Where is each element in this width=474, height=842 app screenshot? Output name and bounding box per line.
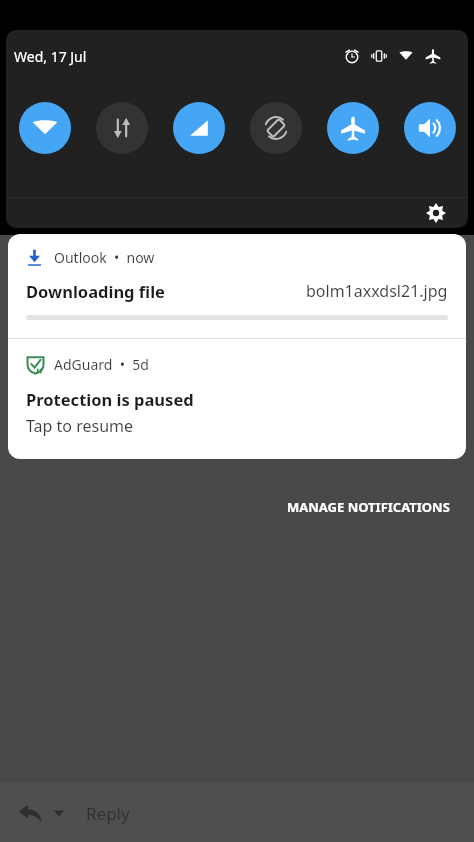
other: Vibrate mode <box>370 47 388 65</box>
button[interactable]: AdGuard • 5d <box>8 339 466 459</box>
other: More reply options <box>48 802 70 824</box>
button[interactable]: Reply <box>14 797 130 829</box>
staticText: Outlook • now <box>54 248 155 267</box>
other: Wi-Fi <box>397 47 415 65</box>
button[interactable]: Mobile data <box>96 102 148 154</box>
staticText: Tap to resume <box>26 415 134 437</box>
button[interactable]: MANAGE NOTIFICATIONS <box>281 494 456 520</box>
button[interactable]: Mobile signal <box>173 102 225 154</box>
staticText: bolm1axxdsl21.jpg <box>306 280 448 302</box>
button[interactable]: Outlook • now <box>8 234 466 338</box>
button[interactable]: Settings <box>422 199 450 227</box>
button[interactable]: Auto rotate <box>250 102 302 154</box>
other: Airplane mode <box>424 47 442 65</box>
staticText: MANAGE NOTIFICATIONS <box>287 498 450 516</box>
other: Alarm set <box>343 47 361 65</box>
staticText: AdGuard • 5d <box>54 355 149 374</box>
other: Reply <box>14 797 46 829</box>
staticText: Reply <box>86 802 130 825</box>
button[interactable]: Wi-Fi <box>19 102 71 154</box>
staticText: Protection is paused <box>26 388 194 410</box>
button[interactable]: Airplane mode <box>327 102 379 154</box>
staticText: Downloading file <box>26 280 165 302</box>
button[interactable]: Sound <box>404 102 456 154</box>
staticText: Wed, 17 Jul <box>14 47 87 66</box>
